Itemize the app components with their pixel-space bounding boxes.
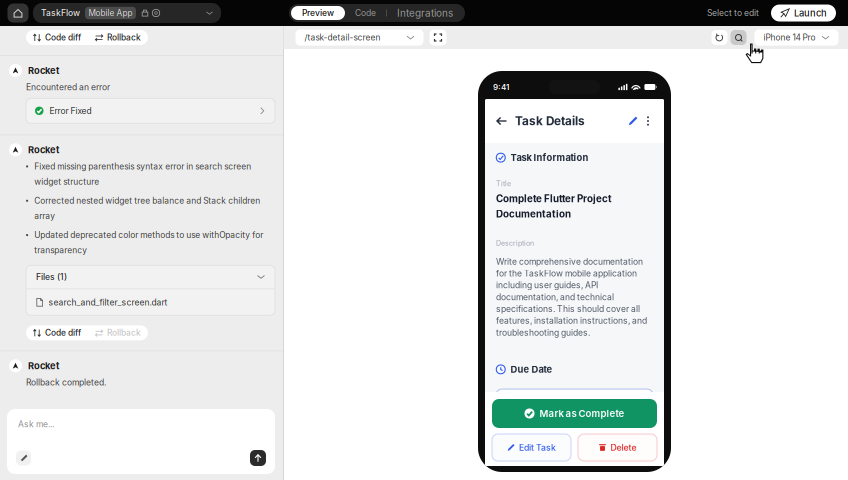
button[interactable]: search_and_filter_screen.dart [26, 289, 275, 315]
button[interactable]: Code diff [26, 30, 88, 45]
button[interactable]: /task-detail-screen [295, 29, 423, 45]
staticText: Rocket [28, 360, 59, 371]
staticText: Description [496, 239, 534, 247]
button[interactable]: Inspect element [727, 30, 746, 45]
staticText: Rocket [28, 144, 59, 155]
button[interactable]: Back [493, 112, 510, 130]
staticText: 9:41 [493, 82, 509, 92]
button[interactable]: Error Fixed [0, 92, 275, 123]
staticText: Fixed missing parenthesis syntax error i… [34, 161, 251, 187]
staticText: Edit Task [519, 442, 556, 453]
staticText: Files (1) [36, 272, 67, 282]
button[interactable]: Attach file [16, 450, 31, 465]
staticText: TaskFlow [41, 8, 80, 18]
button[interactable]: Preview [291, 6, 345, 20]
staticText: iPhone 14 Pro [763, 32, 815, 43]
staticText: Launch [794, 7, 827, 19]
button[interactable]: Due date [496, 375, 653, 413]
staticText: Rollback completed. [26, 377, 106, 388]
staticText: Mobile App [88, 8, 132, 18]
staticText: Complete Flutter Project Documentation [496, 193, 612, 220]
staticText: Code diff [45, 32, 81, 43]
button[interactable]: Edit [625, 112, 641, 130]
staticText: Write comprehensive documentation for th… [496, 256, 647, 338]
button[interactable]: Fullscreen [423, 29, 446, 45]
staticText: Due Date [510, 364, 552, 375]
staticText: /task-detail-screen [304, 32, 380, 43]
staticText: search_and_filter_screen.dart [48, 297, 167, 307]
staticText: Rollback [107, 328, 141, 338]
button[interactable]: Code [345, 6, 386, 20]
staticText: Task Information [510, 152, 588, 163]
button[interactable]: Send [250, 450, 266, 466]
button[interactable]: TaskFlow [33, 3, 221, 23]
staticText: Encountered an error [26, 82, 110, 92]
staticText: Rollback [107, 32, 141, 43]
staticText: Select to edit [707, 8, 759, 18]
button[interactable]: Edit Task [492, 434, 571, 461]
staticText: Rocket [28, 65, 59, 76]
button[interactable]: Integrations [387, 6, 463, 20]
staticText: Mark as Complete [539, 408, 624, 419]
button[interactable]: Mark as Complete [492, 399, 657, 428]
staticText: Error Fixed [49, 106, 91, 116]
staticText: Corrected nested widget tree balance and… [34, 196, 260, 221]
button[interactable]: Launch [759, 4, 836, 21]
staticText: Preview [302, 8, 334, 18]
staticText: Delete [610, 442, 636, 453]
staticText: Code [355, 8, 376, 18]
button[interactable]: Rollback [88, 30, 148, 45]
button[interactable]: Home [3, 0, 33, 26]
staticText: Task Details [515, 114, 585, 128]
button[interactable]: More options [641, 112, 655, 130]
staticText: Integrations [397, 7, 453, 19]
button[interactable]: Code diff [26, 325, 88, 340]
staticText: Ask me... [18, 419, 54, 429]
staticText: Code diff [45, 328, 81, 338]
button[interactable]: Reload [711, 30, 727, 45]
button[interactable]: iPhone 14 Pro [746, 29, 838, 45]
button[interactable]: Files (1) [26, 265, 275, 288]
button[interactable]: Rollback [88, 325, 148, 340]
staticText: Title [496, 179, 511, 188]
staticText: Updated deprecated color methods to use … [34, 230, 263, 255]
button[interactable]: Delete [578, 434, 657, 461]
